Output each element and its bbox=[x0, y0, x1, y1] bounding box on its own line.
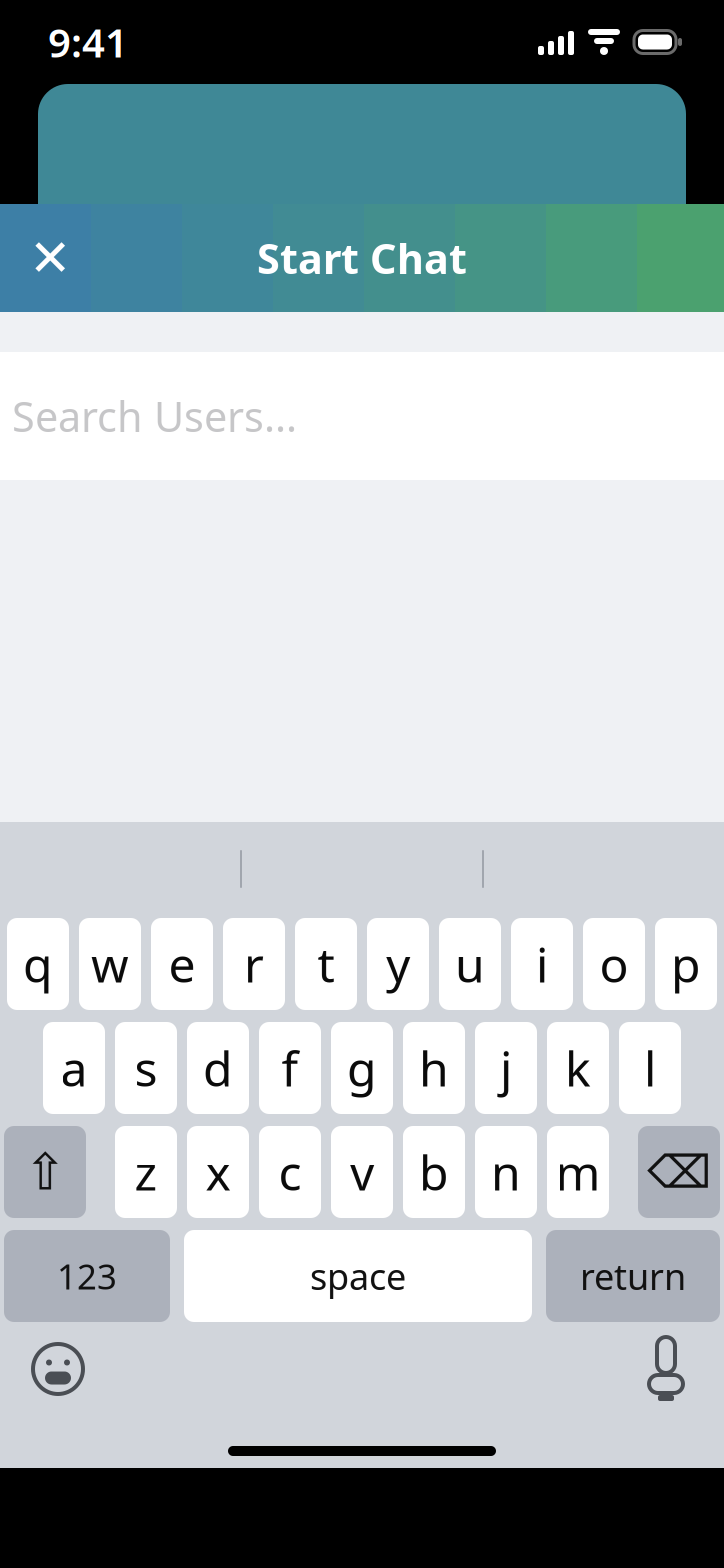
button[interactable]: u bbox=[439, 918, 501, 1010]
button[interactable]: b bbox=[403, 1126, 465, 1218]
button[interactable]: l bbox=[619, 1022, 681, 1114]
staticText: t bbox=[317, 932, 334, 996]
staticText: return bbox=[580, 1252, 686, 1300]
staticText: o bbox=[599, 932, 628, 996]
staticText: m bbox=[555, 1140, 600, 1204]
staticText: a bbox=[60, 1036, 87, 1100]
staticText: h bbox=[419, 1036, 449, 1100]
button[interactable]: q bbox=[7, 918, 69, 1010]
button[interactable]: Search Users... bbox=[0, 352, 724, 480]
staticText: v bbox=[350, 1140, 374, 1204]
button[interactable]: w bbox=[79, 918, 141, 1010]
button[interactable]: a bbox=[43, 1022, 105, 1114]
staticText: f bbox=[281, 1036, 298, 1100]
staticText: q bbox=[23, 932, 53, 996]
button[interactable]: Emoji bbox=[18, 1333, 98, 1405]
staticText: 123 bbox=[57, 1253, 117, 1299]
button[interactable]: h bbox=[403, 1022, 465, 1114]
button[interactable]: Delete bbox=[638, 1126, 720, 1218]
button[interactable]: Shift bbox=[4, 1126, 86, 1218]
staticText: s bbox=[134, 1036, 157, 1100]
button[interactable]: p bbox=[655, 918, 717, 1010]
staticText: b bbox=[419, 1140, 449, 1204]
button[interactable]: g bbox=[331, 1022, 393, 1114]
staticText: e bbox=[168, 932, 195, 996]
staticText: i bbox=[536, 932, 548, 996]
button[interactable]: r bbox=[223, 918, 285, 1010]
button[interactable]: d bbox=[187, 1022, 249, 1114]
button[interactable]: x bbox=[187, 1126, 249, 1218]
button[interactable]: 123 bbox=[4, 1230, 170, 1322]
staticText: r bbox=[244, 932, 264, 996]
staticText: z bbox=[134, 1140, 157, 1204]
staticText: g bbox=[347, 1036, 377, 1100]
staticText: u bbox=[455, 932, 485, 996]
button[interactable]: s bbox=[115, 1022, 177, 1114]
button[interactable]: f bbox=[259, 1022, 321, 1114]
staticText: j bbox=[500, 1036, 512, 1100]
staticText: x bbox=[205, 1140, 230, 1204]
button[interactable]: t bbox=[295, 918, 357, 1010]
button[interactable]: n bbox=[475, 1126, 537, 1218]
staticText: k bbox=[565, 1036, 591, 1100]
staticText: p bbox=[671, 932, 701, 996]
button[interactable]: space bbox=[184, 1230, 532, 1322]
staticText: y bbox=[386, 932, 410, 996]
staticText: d bbox=[203, 1036, 233, 1100]
button[interactable]: e bbox=[151, 918, 213, 1010]
button[interactable]: Dictation bbox=[626, 1333, 706, 1405]
staticText: w bbox=[91, 932, 129, 996]
staticText: n bbox=[491, 1140, 521, 1204]
button[interactable]: j bbox=[475, 1022, 537, 1114]
button[interactable]: z bbox=[115, 1126, 177, 1218]
button[interactable]: v bbox=[331, 1126, 393, 1218]
button[interactable]: y bbox=[367, 918, 429, 1010]
staticText: 9:41 bbox=[48, 15, 128, 68]
staticText: ⌫ bbox=[647, 1146, 711, 1198]
staticText: Start Chat bbox=[257, 231, 467, 285]
button[interactable]: return bbox=[546, 1230, 720, 1322]
staticText: c bbox=[278, 1140, 301, 1204]
button[interactable]: o bbox=[583, 918, 645, 1010]
button[interactable]: m bbox=[547, 1126, 609, 1218]
staticText: ✕ bbox=[29, 229, 71, 287]
button[interactable]: Close bbox=[0, 204, 100, 312]
staticText: space bbox=[310, 1252, 406, 1300]
staticText: Search Users... bbox=[12, 389, 297, 443]
button[interactable]: c bbox=[259, 1126, 321, 1218]
button[interactable]: i bbox=[511, 918, 573, 1010]
button[interactable]: k bbox=[547, 1022, 609, 1114]
staticText: ⇧ bbox=[24, 1143, 66, 1201]
staticText: l bbox=[644, 1036, 656, 1100]
